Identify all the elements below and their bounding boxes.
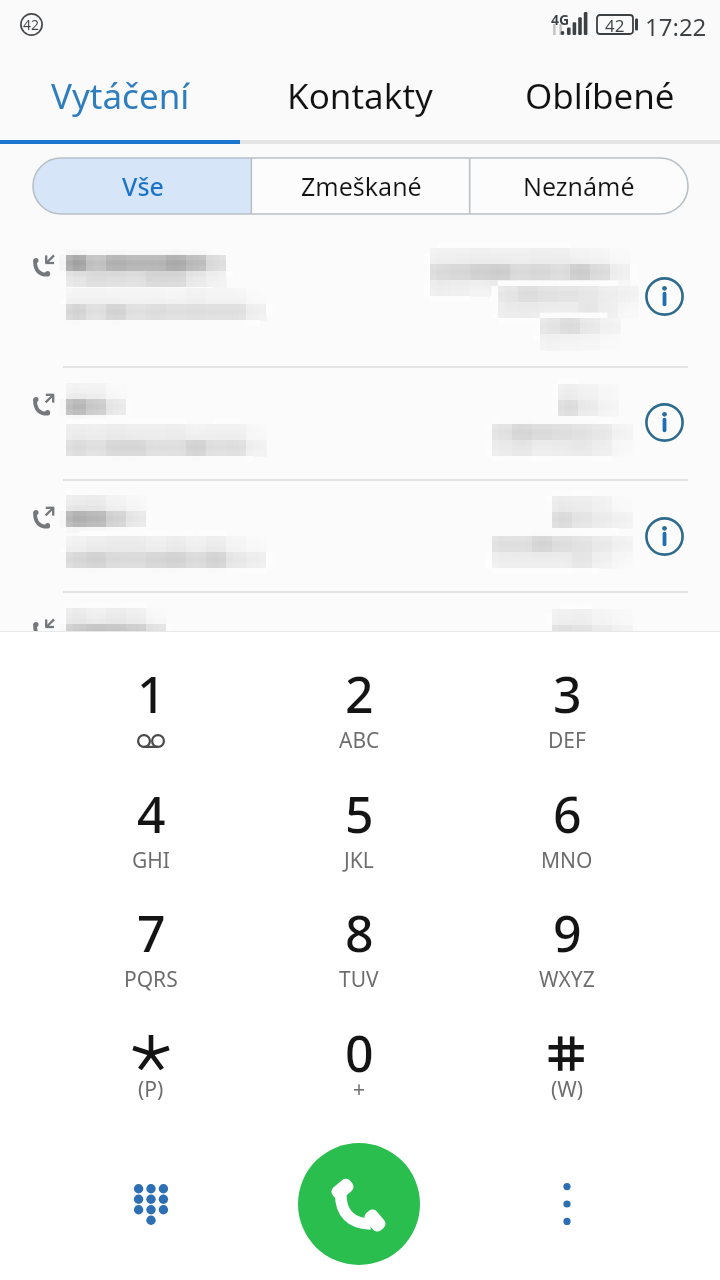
staticText: 4G bbox=[551, 10, 570, 29]
button[interactable]: Call bbox=[298, 1143, 420, 1265]
staticText: Neznámé bbox=[523, 169, 635, 203]
button[interactable]: Zmeškané bbox=[252, 158, 470, 214]
button[interactable] bbox=[0, 479, 720, 591]
button[interactable]: Call details bbox=[645, 277, 684, 316]
button[interactable]: Call details bbox=[645, 403, 684, 442]
staticText: 42 bbox=[605, 14, 625, 37]
button[interactable]: 3 bbox=[463, 654, 671, 772]
button[interactable]: (W) bbox=[463, 1013, 671, 1131]
button[interactable] bbox=[0, 366, 720, 479]
staticText: 3 bbox=[553, 660, 582, 728]
staticText: Vše bbox=[122, 169, 164, 203]
button[interactable]: Show keypad bbox=[119, 1172, 183, 1236]
staticText: (W) bbox=[551, 1075, 584, 1104]
staticText: Vytáčení bbox=[51, 72, 190, 120]
button[interactable]: 0 bbox=[255, 1013, 463, 1131]
button[interactable]: Vše bbox=[33, 158, 252, 214]
button[interactable]: 4 bbox=[47, 774, 255, 892]
staticText: TUV bbox=[339, 965, 379, 994]
staticText: 6 bbox=[553, 780, 582, 848]
staticText: JKL bbox=[344, 846, 374, 875]
button[interactable]: Neznámé bbox=[470, 158, 688, 214]
staticText: GHI bbox=[132, 846, 170, 875]
staticText: PQRS bbox=[124, 965, 178, 994]
button[interactable]: Kontakty bbox=[240, 52, 480, 139]
staticText: MNO bbox=[541, 846, 593, 875]
staticText: ABC bbox=[339, 726, 380, 755]
button[interactable]: Oblíbené bbox=[480, 52, 720, 139]
button[interactable]: More options bbox=[535, 1172, 599, 1236]
staticText: 17:22 bbox=[645, 10, 707, 43]
staticText: 7 bbox=[137, 899, 166, 967]
button[interactable]: (P) bbox=[47, 1013, 255, 1131]
button[interactable] bbox=[0, 591, 720, 632]
button[interactable]: 2 bbox=[255, 654, 463, 772]
staticText: 1 bbox=[137, 660, 166, 728]
staticText: Oblíbené bbox=[525, 72, 675, 120]
staticText: Zmeškané bbox=[301, 169, 422, 203]
staticText: (P) bbox=[138, 1075, 164, 1104]
staticText: 8 bbox=[345, 899, 374, 967]
staticText: 5 bbox=[345, 780, 374, 848]
button[interactable]: Vytáčení bbox=[0, 52, 240, 139]
staticText: 0 bbox=[345, 1019, 374, 1087]
staticText: WXYZ bbox=[539, 965, 595, 994]
staticText: 4 bbox=[137, 780, 166, 848]
button[interactable]: Call details bbox=[645, 517, 684, 556]
staticText: + bbox=[353, 1075, 366, 1104]
button[interactable] bbox=[0, 222, 720, 366]
button[interactable]: 7 bbox=[47, 893, 255, 1011]
staticText: DEF bbox=[548, 726, 586, 755]
staticText: 42 bbox=[23, 15, 40, 34]
staticText: Kontakty bbox=[287, 72, 433, 120]
button[interactable]: 8 bbox=[255, 893, 463, 1011]
button[interactable]: 1 bbox=[47, 654, 255, 772]
staticText: 9 bbox=[553, 899, 582, 967]
button[interactable]: 9 bbox=[463, 893, 671, 1011]
button[interactable]: 6 bbox=[463, 774, 671, 892]
button[interactable]: 5 bbox=[255, 774, 463, 892]
staticText: 2 bbox=[345, 660, 374, 728]
